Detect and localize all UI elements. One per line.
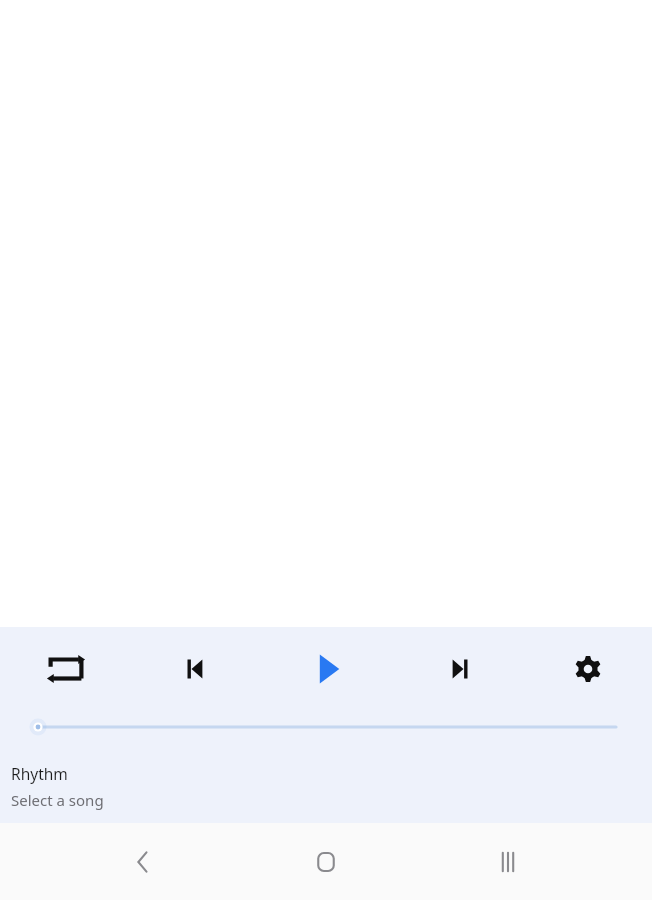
button[interactable]: Seek bar bbox=[0, 711, 652, 743]
button[interactable]: Play bbox=[302, 643, 354, 695]
button[interactable]: Home bbox=[298, 834, 354, 890]
button[interactable]: Back bbox=[115, 834, 171, 890]
button[interactable]: Next track bbox=[432, 643, 484, 695]
button[interactable]: Settings bbox=[562, 643, 614, 695]
button[interactable]: Previous track bbox=[171, 643, 223, 695]
button[interactable]: Recent apps bbox=[480, 834, 536, 890]
button[interactable]: Rhythm bbox=[11, 763, 104, 810]
staticText: Select a song bbox=[11, 790, 104, 810]
staticText: Rhythm bbox=[11, 763, 68, 784]
button[interactable]: Repeat bbox=[40, 643, 92, 695]
